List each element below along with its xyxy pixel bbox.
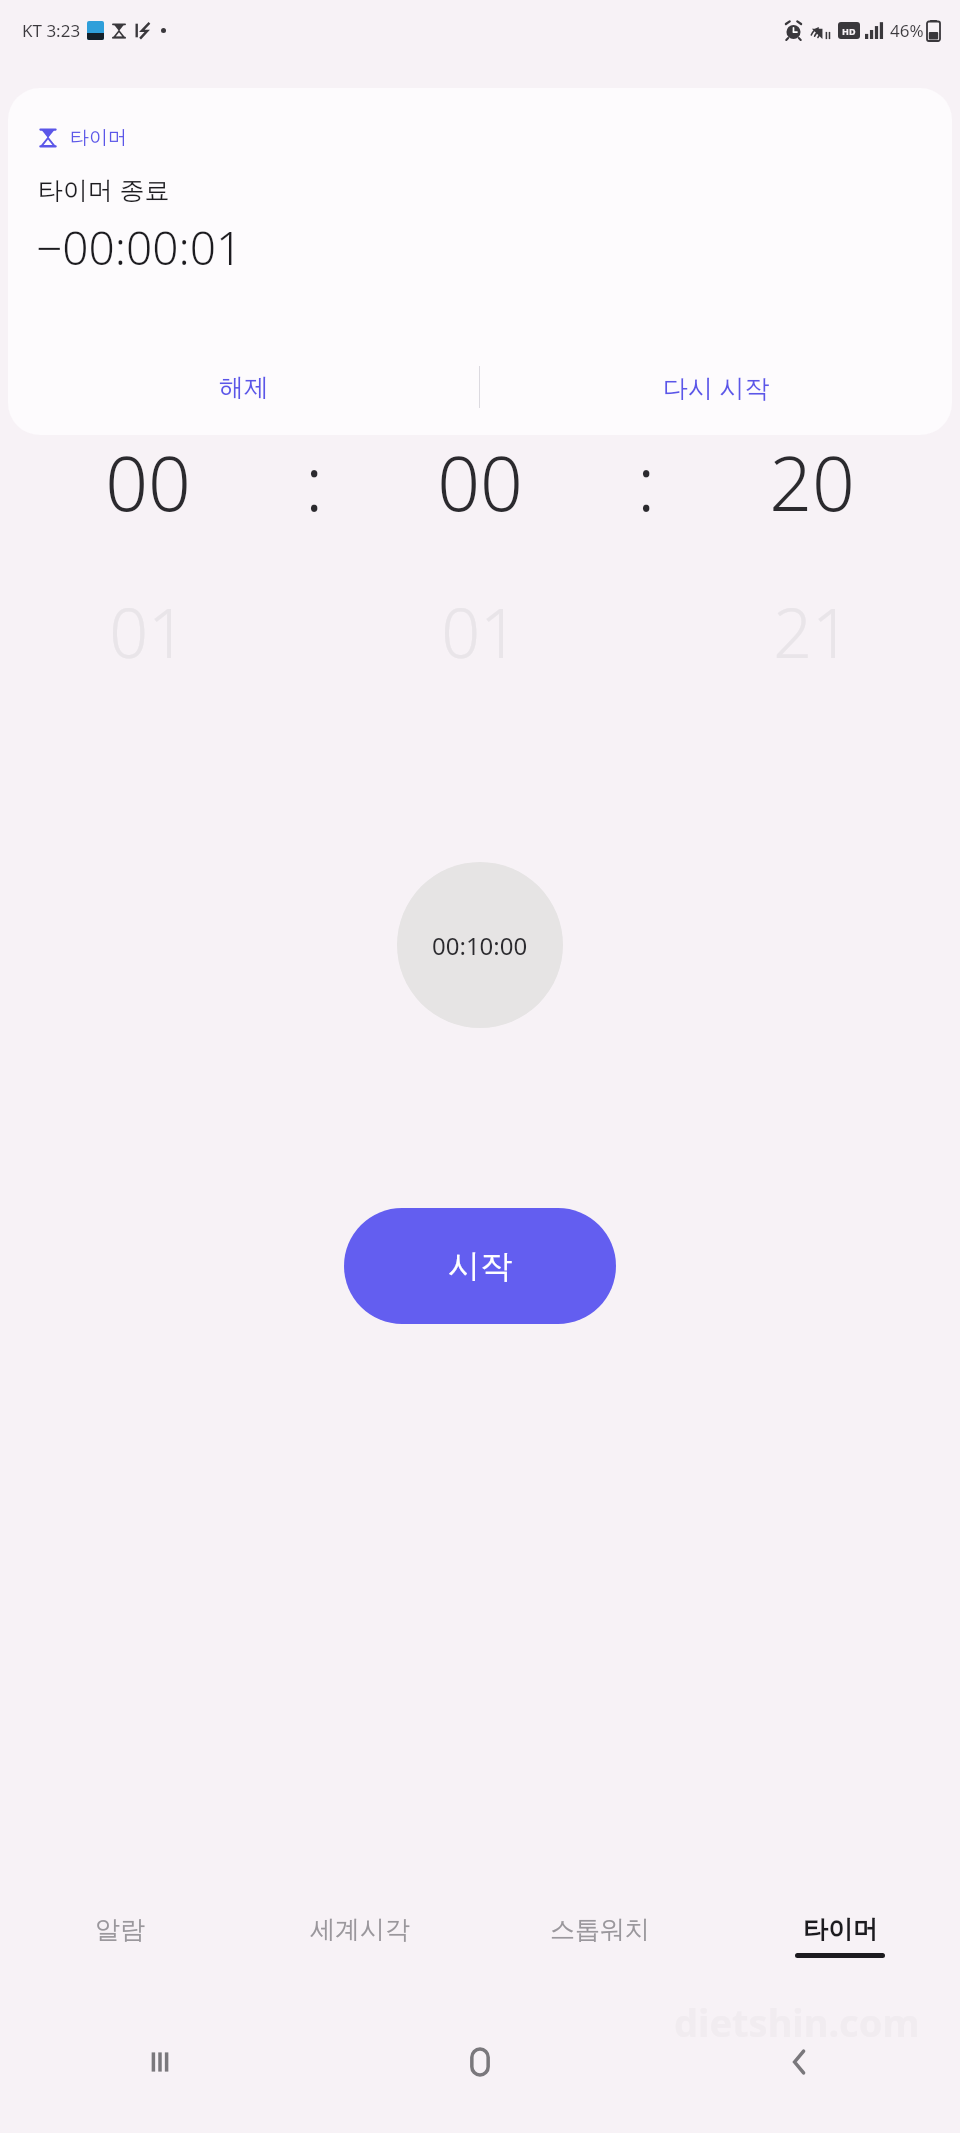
button[interactable]: 시작 <box>344 1208 616 1324</box>
staticText: 01 <box>109 585 187 678</box>
button[interactable]: 다시 시작 <box>480 339 952 435</box>
staticText: KT 3:23 <box>22 19 81 42</box>
button[interactable]: Home <box>320 1990 640 2133</box>
button[interactable]: Recents <box>0 1990 320 2133</box>
button[interactable]: 알람 <box>0 1882 240 1990</box>
staticText: 00 <box>105 431 191 533</box>
staticText: −00:00:01 <box>36 216 243 279</box>
button[interactable]: 타이머 <box>720 1882 960 1990</box>
staticText: 01 <box>441 585 519 678</box>
button[interactable]: 00:10:00 <box>397 862 563 1028</box>
staticText: 00:10:00 <box>432 929 528 962</box>
staticText: 세계시각 <box>310 1914 410 1945</box>
staticText: 타이머 종료 <box>38 172 170 206</box>
staticText: 00 <box>437 431 523 533</box>
button[interactable]: 세계시각 <box>240 1882 480 1990</box>
staticText: 다시 시작 <box>663 370 770 404</box>
staticText: 21 <box>773 585 851 678</box>
button[interactable]: 스톱워치 <box>480 1882 720 1990</box>
staticText: : <box>637 431 656 533</box>
staticText: 시작 <box>448 1246 512 1286</box>
staticText: 해제 <box>219 372 269 403</box>
staticText: 타이머 <box>70 126 127 150</box>
staticText: 46% <box>890 19 924 42</box>
staticText: 20 <box>769 431 855 533</box>
staticText: HD <box>842 25 856 37</box>
staticText: 스톱워치 <box>550 1914 650 1945</box>
button[interactable]: 해제 <box>8 339 479 435</box>
button[interactable]: 타이머 <box>8 88 952 435</box>
button[interactable]: Back <box>640 1990 960 2133</box>
staticText: : <box>305 431 324 533</box>
staticText: 타이머 <box>803 1914 878 1945</box>
staticText: 알람 <box>95 1914 145 1945</box>
